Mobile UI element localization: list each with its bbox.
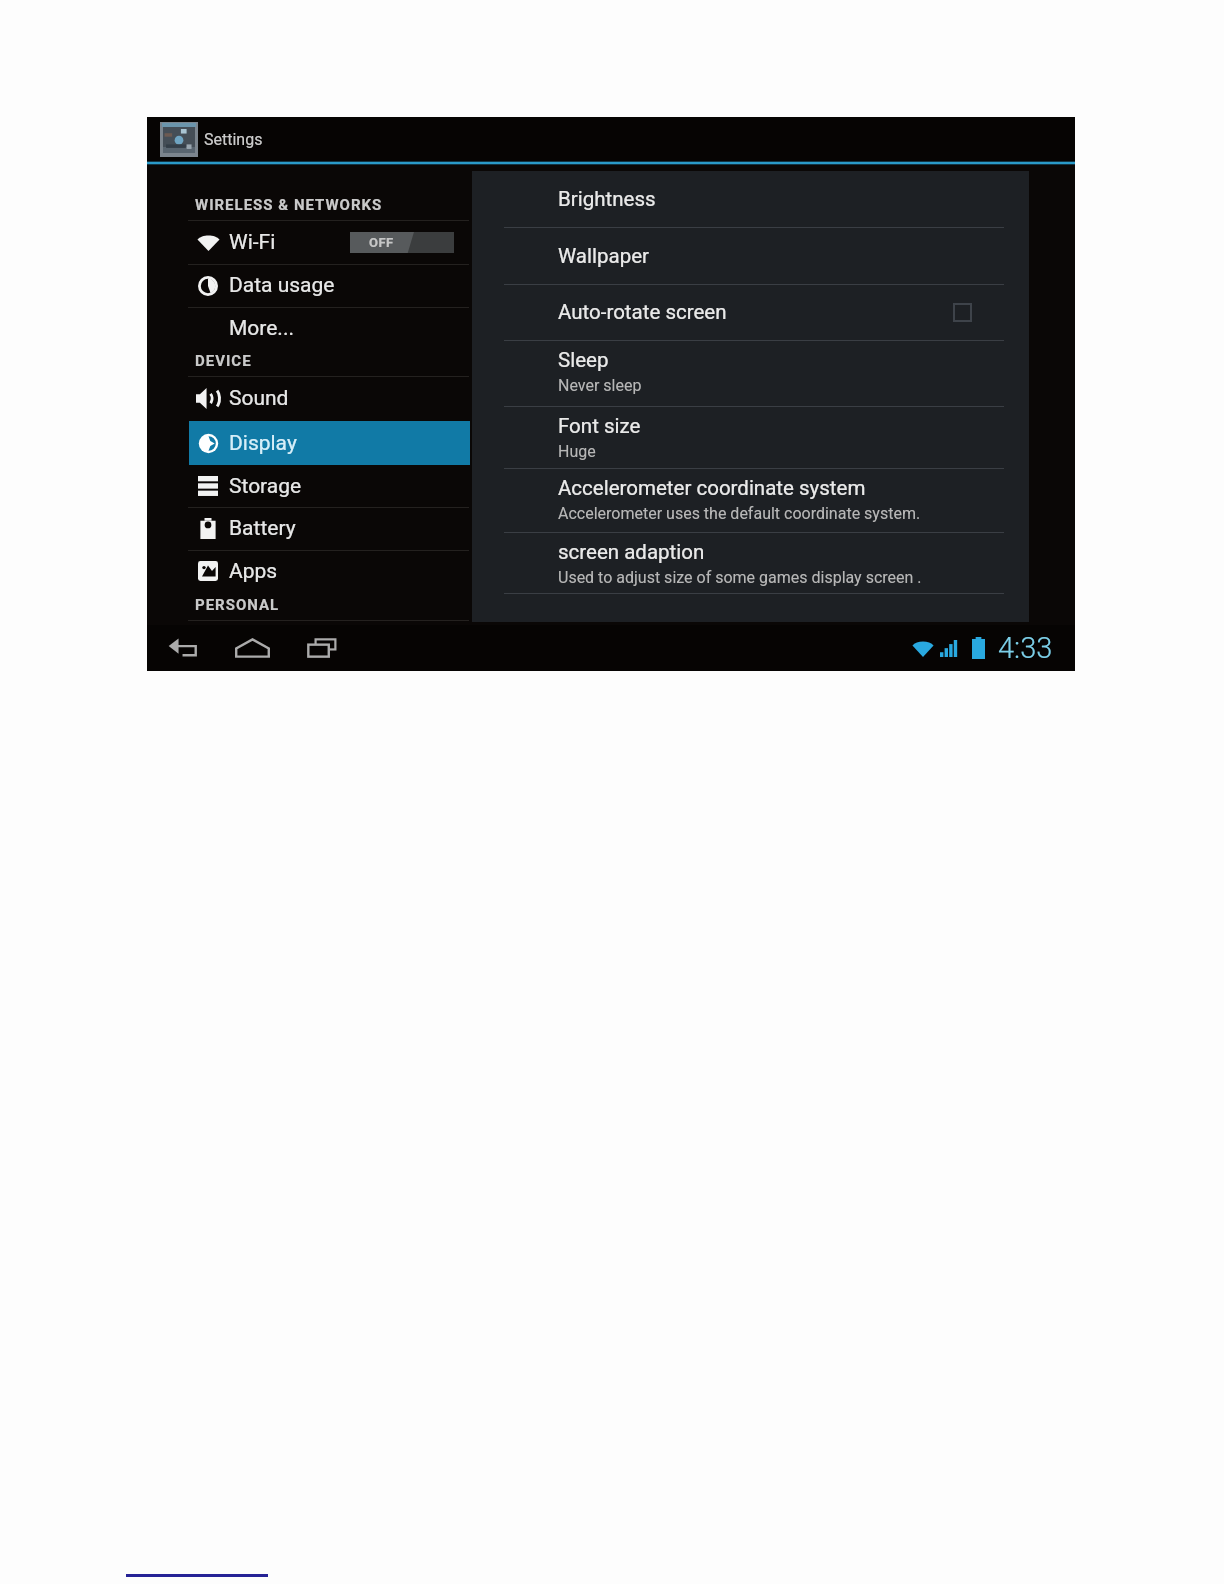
button[interactable]: Display	[147, 421, 472, 465]
staticText: Battery	[229, 516, 296, 541]
button[interactable]: Wi-Fi	[147, 220, 472, 264]
staticText: Auto-rotate screen	[558, 300, 727, 324]
staticText: Wi-Fi	[229, 230, 276, 255]
button[interactable]: Data usage	[147, 264, 472, 307]
staticText: Data usage	[229, 273, 335, 298]
staticText: Never sleep	[558, 376, 642, 395]
staticText: screen adaption	[558, 540, 705, 564]
button[interactable]: Battery	[147, 507, 472, 550]
staticText: DEVICE	[195, 352, 252, 370]
button[interactable]: Font size	[472, 406, 1029, 468]
staticText: Sound	[229, 386, 289, 411]
staticText: Display	[229, 431, 297, 456]
button[interactable]: Home	[226, 625, 278, 671]
staticText: Accelerometer uses the default coordinat…	[558, 504, 921, 523]
staticText: 4:33	[998, 631, 1053, 665]
staticText: WIRELESS & NETWORKS	[195, 196, 383, 214]
staticText: Settings	[204, 130, 263, 149]
button[interactable]: Accelerometer coordinate system	[472, 468, 1029, 532]
button[interactable]: Apps	[147, 550, 472, 592]
staticText: Brightness	[558, 187, 656, 211]
button[interactable]: More...	[147, 307, 472, 350]
staticText: OFF	[369, 235, 394, 250]
staticText: Sleep	[558, 348, 609, 372]
staticText: Huge	[558, 442, 596, 461]
button[interactable]: Sleep	[472, 340, 1029, 406]
button[interactable]: Recent apps	[297, 625, 349, 671]
button[interactable]: Storage	[147, 465, 472, 507]
staticText: PERSONAL	[195, 596, 280, 614]
button[interactable]: Auto-rotate screen	[472, 284, 1029, 340]
staticText: Font size	[558, 414, 641, 438]
button[interactable]: Wallpaper	[472, 227, 1029, 284]
staticText: More...	[229, 316, 294, 341]
staticText: Apps	[229, 559, 278, 584]
button[interactable]: Back	[158, 625, 210, 671]
button[interactable]: screen adaption	[472, 532, 1029, 593]
staticText: Accelerometer coordinate system	[558, 476, 866, 500]
button[interactable]: Sound	[147, 376, 472, 421]
button[interactable]: Brightness	[472, 171, 1029, 227]
staticText: Used to adjust size of some games displa…	[558, 568, 922, 587]
staticText: Wallpaper	[558, 244, 649, 268]
staticText: Storage	[229, 474, 302, 499]
